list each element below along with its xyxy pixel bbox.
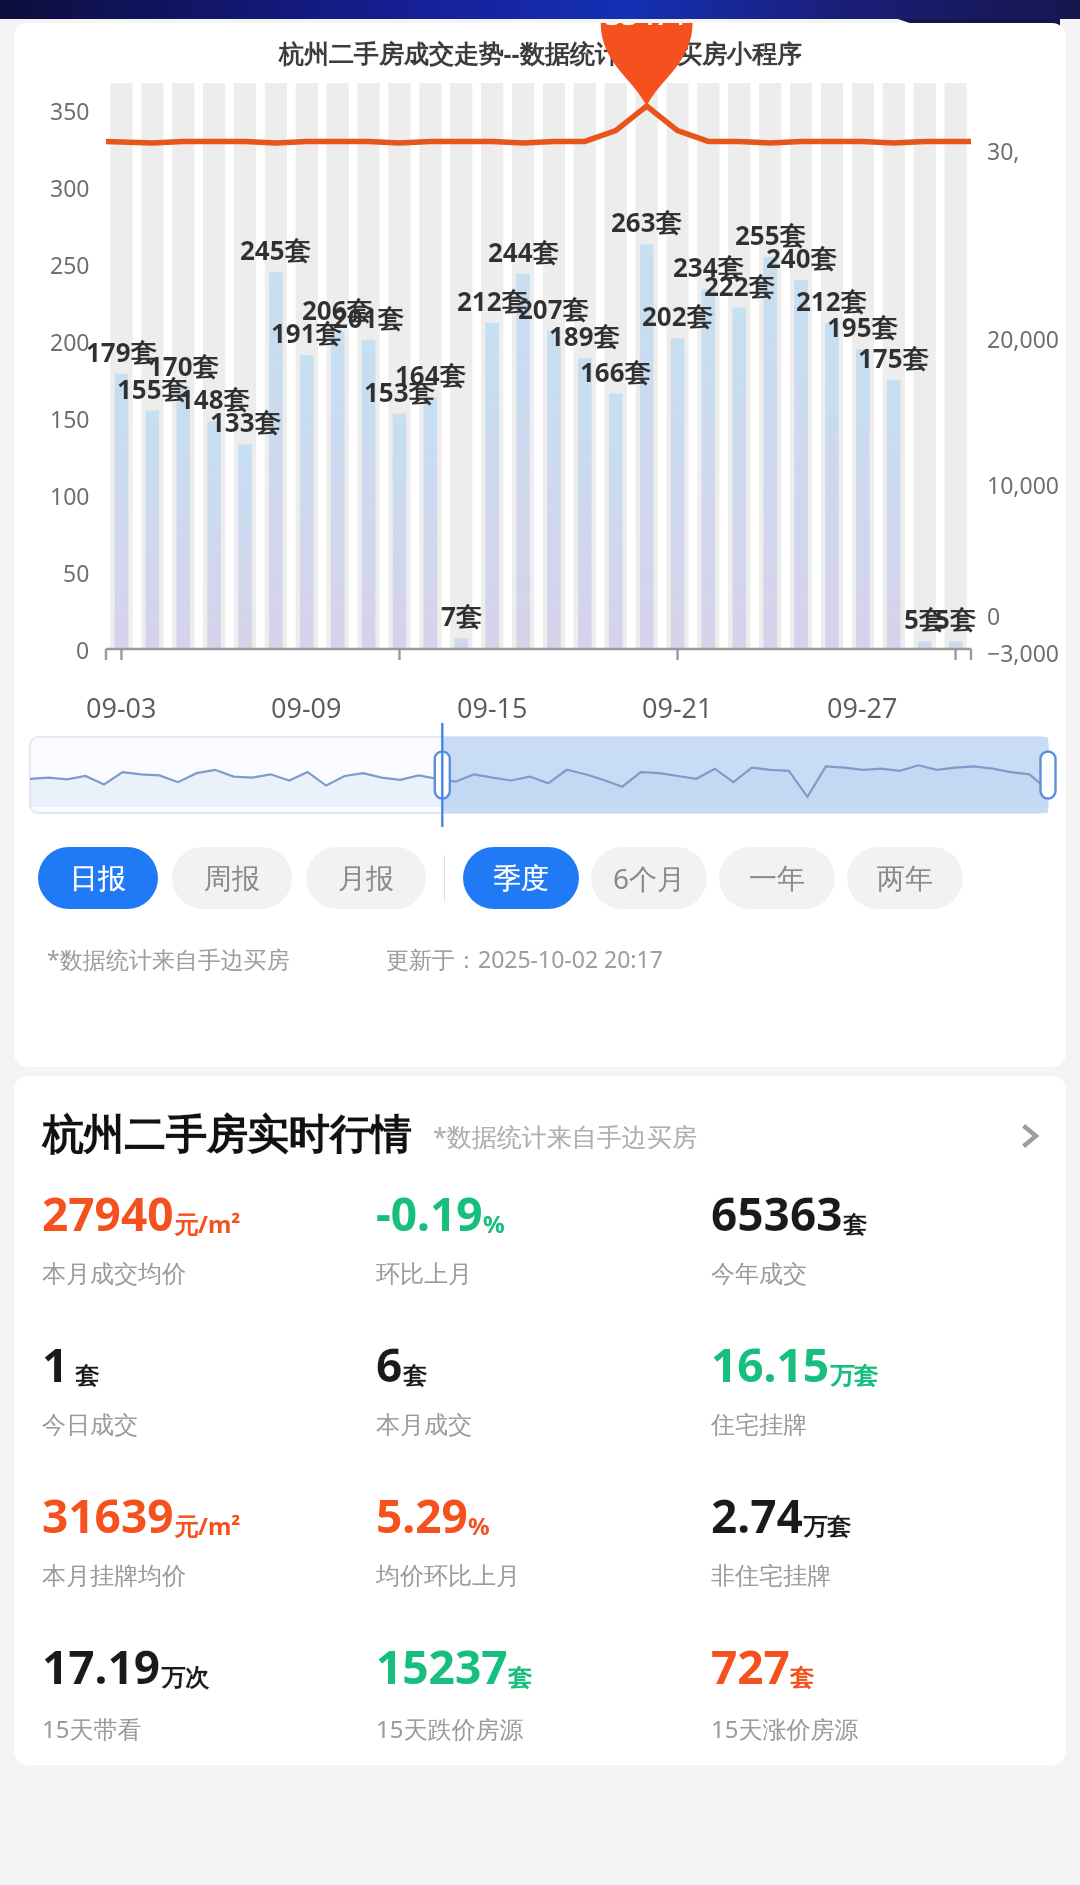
- button[interactable]: 6个月: [591, 847, 707, 909]
- staticText: 27940: [42, 1182, 174, 1245]
- staticText: 222套: [704, 268, 775, 304]
- button[interactable]: 一年: [719, 847, 835, 909]
- staticText: 万套: [830, 1361, 878, 1391]
- staticText: 6个月: [613, 859, 686, 897]
- staticText: 10,000: [987, 469, 1059, 500]
- staticText: 今年成交: [711, 1259, 807, 1289]
- staticText: 263套: [611, 204, 682, 240]
- staticText: 350: [50, 95, 90, 126]
- staticText: 万套: [803, 1512, 851, 1542]
- staticText: 万次: [161, 1663, 209, 1693]
- staticText: 5套: [904, 601, 945, 637]
- staticText: 元/m²: [174, 1207, 241, 1240]
- staticText: 33471: [605, 23, 688, 33]
- staticText: 212套: [457, 283, 528, 319]
- staticText: 202套: [642, 298, 713, 334]
- staticText: 15天带看: [42, 1712, 142, 1745]
- staticText: 201套: [333, 300, 404, 336]
- staticText: 1: [42, 1333, 69, 1396]
- staticText: 206套: [302, 292, 373, 328]
- staticText: 非住宅挂牌: [711, 1561, 831, 1591]
- staticText: 套: [508, 1663, 532, 1693]
- staticText: 环比上月: [376, 1259, 472, 1289]
- staticText: 65363: [711, 1182, 843, 1245]
- staticText: 50: [63, 557, 90, 588]
- staticText: *数据统计来自手边买房: [433, 1119, 697, 1153]
- staticText: 15天跌价房源: [376, 1712, 524, 1745]
- staticText: 155套: [117, 371, 188, 407]
- staticText: 212套: [796, 283, 867, 319]
- staticText: 255套: [735, 217, 806, 253]
- staticText: 本月成交: [376, 1410, 472, 1440]
- staticText: 套: [843, 1210, 867, 1240]
- staticText: *数据统计来自手边买房: [47, 943, 290, 974]
- staticText: 套: [403, 1361, 427, 1391]
- staticText: 周报: [204, 861, 260, 896]
- staticText: 套: [69, 1358, 100, 1391]
- staticText: 09-21: [642, 689, 713, 726]
- staticText: 更新于：2025-10-02 20:17: [386, 943, 663, 974]
- staticText: 5套: [935, 601, 976, 637]
- button[interactable]: 两年: [847, 847, 963, 909]
- staticText: 日报: [70, 861, 126, 896]
- staticText: 20,000: [987, 323, 1059, 354]
- staticText: 148套: [179, 381, 250, 417]
- staticText: 170套: [148, 348, 219, 384]
- staticText: 164套: [395, 357, 466, 393]
- staticText: 5.29: [376, 1484, 468, 1547]
- staticText: 今日成交: [42, 1410, 138, 1440]
- staticText: 133套: [210, 404, 281, 440]
- staticText: 09-09: [271, 689, 342, 726]
- button[interactable]: 周报: [172, 847, 292, 909]
- staticText: 杭州二手房实时行情: [42, 1110, 411, 1162]
- staticText: 6: [376, 1333, 403, 1396]
- staticText: 09-15: [457, 689, 528, 726]
- staticText: 207套: [518, 291, 589, 327]
- staticText: 本月挂牌均价: [42, 1561, 186, 1591]
- staticText: 09-03: [86, 689, 157, 726]
- staticText: 153套: [364, 374, 435, 410]
- staticText: 244套: [488, 234, 559, 270]
- button[interactable]: 月报: [306, 847, 426, 909]
- staticText: 15237: [376, 1635, 508, 1698]
- staticText: 7套: [441, 598, 482, 634]
- staticText: −3,000: [987, 637, 1059, 668]
- staticText: 套: [790, 1663, 814, 1693]
- staticText: 166套: [580, 354, 651, 390]
- staticText: 2.74: [711, 1484, 803, 1547]
- staticText: 191套: [271, 315, 342, 351]
- staticText: 季度: [493, 861, 549, 896]
- staticText: -0.19: [376, 1182, 483, 1245]
- other: View details: [1012, 1119, 1046, 1153]
- staticText: 245套: [240, 232, 311, 268]
- staticText: 31639: [42, 1484, 174, 1547]
- staticText: 300: [50, 172, 90, 203]
- staticText: 179套: [86, 334, 157, 370]
- staticText: 175套: [858, 340, 929, 376]
- staticText: 一年: [749, 861, 805, 896]
- staticText: 17.19: [42, 1635, 161, 1698]
- staticText: 0: [76, 634, 90, 665]
- staticText: 均价环比上月: [376, 1561, 520, 1591]
- staticText: 30,: [987, 135, 1020, 166]
- staticText: 727: [711, 1635, 790, 1698]
- button[interactable]: 杭州二手房实时行情: [42, 1110, 1046, 1162]
- staticText: 100: [50, 480, 90, 511]
- staticText: 0: [987, 600, 1001, 631]
- staticText: %: [483, 1207, 505, 1240]
- staticText: 250: [50, 249, 90, 280]
- button[interactable]: Adjust visible date range: [30, 737, 1048, 813]
- staticText: 15天涨价房源: [711, 1712, 859, 1745]
- staticText: 住宅挂牌: [711, 1410, 807, 1440]
- staticText: 两年: [877, 861, 933, 896]
- staticText: 杭州二手房成交走势--数据统计:手边买房小程序: [278, 36, 802, 70]
- staticText: 09-27: [827, 689, 898, 726]
- staticText: 195套: [827, 309, 898, 345]
- staticText: 16.15: [711, 1333, 830, 1396]
- button[interactable]: 季度: [463, 847, 579, 909]
- staticText: %: [468, 1509, 490, 1542]
- button[interactable]: 日报: [38, 847, 158, 909]
- staticText: 240套: [766, 240, 837, 276]
- staticText: 月报: [338, 861, 394, 896]
- staticText: 150: [50, 403, 90, 434]
